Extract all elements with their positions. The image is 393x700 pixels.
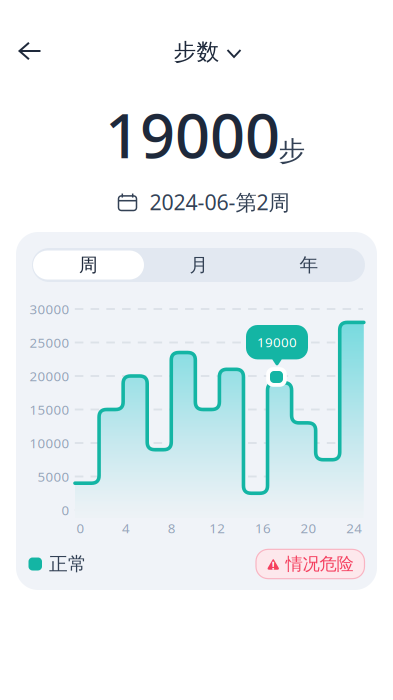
staticText: 年 [299,253,318,276]
staticText: 19000 [257,333,297,351]
staticText: 月 [189,253,208,276]
staticText: 20 [301,519,317,537]
staticText: 10000 [29,434,69,452]
staticText: 0 [61,501,69,519]
button[interactable]: 月 [144,250,254,279]
staticText: 5000 [37,468,69,485]
staticText: ! [272,558,275,573]
button[interactable]: ! [256,549,364,579]
staticText: 步数 [173,38,219,66]
staticText: 4 [122,519,130,537]
button[interactable]: 步数 [163,28,250,76]
button[interactable]: 周 [33,250,144,279]
staticText: 16 [255,519,271,537]
staticText: 20000 [29,367,69,385]
staticText: 正常 [49,552,87,575]
staticText: 30000 [29,300,69,318]
staticText: 15000 [29,401,69,418]
staticText: 25000 [29,334,69,351]
button[interactable]: 年 [254,250,364,279]
staticText: 步 [278,135,305,167]
staticText: 2024-06-第2周 [149,188,289,216]
staticText: 情况危险 [285,553,353,575]
staticText: 0 [76,519,84,537]
staticText: 12 [209,519,225,537]
staticText: 24 [346,519,362,537]
staticText: 周 [79,253,98,276]
staticText: 8 [168,519,176,537]
button[interactable]: Back [6,30,53,72]
staticText: 19000 [105,94,280,175]
